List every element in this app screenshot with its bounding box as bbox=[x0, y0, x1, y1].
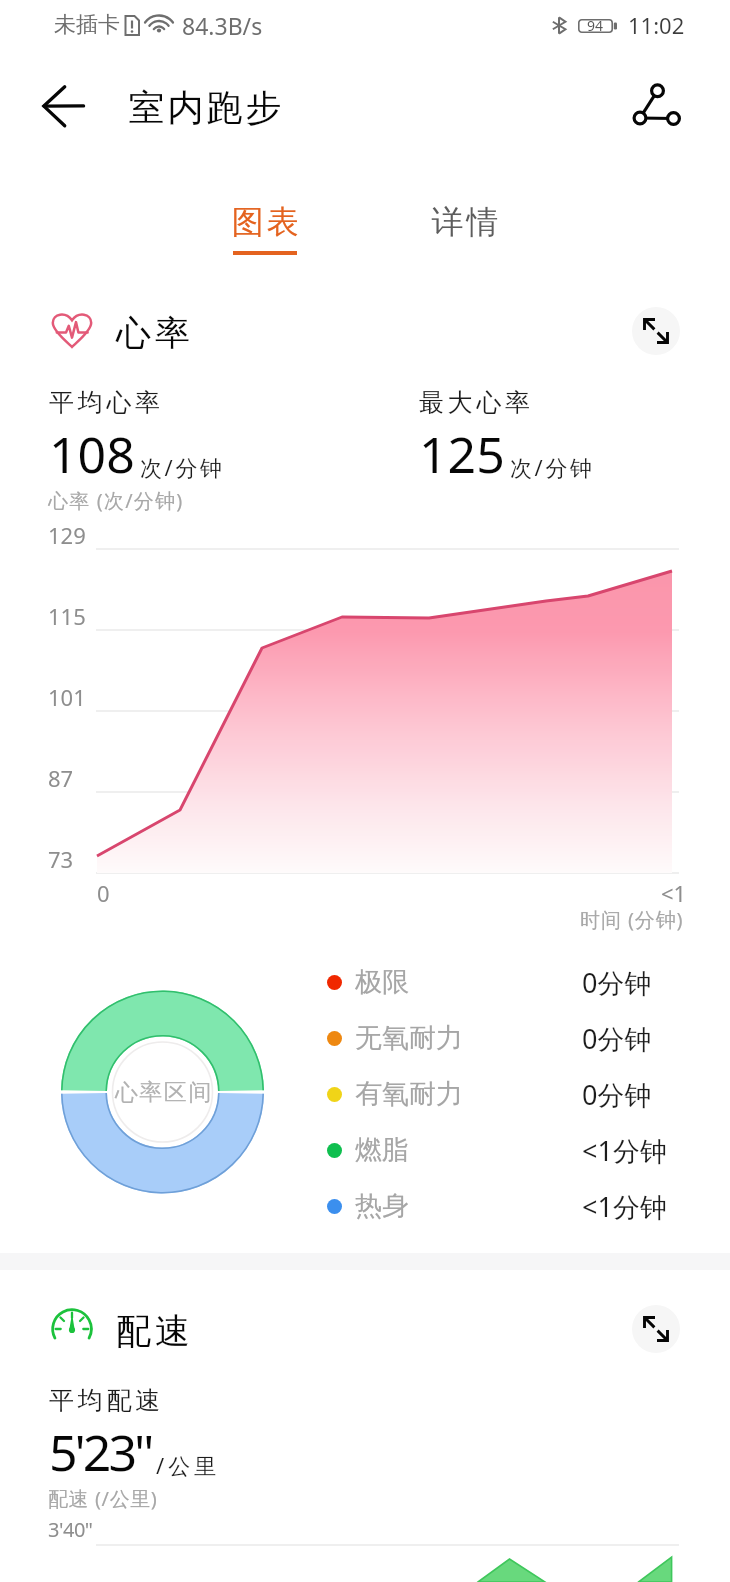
button[interactable]: 热身 bbox=[327, 1186, 690, 1226]
staticText: 详情 bbox=[430, 202, 500, 242]
button[interactable]: Expand bbox=[632, 1305, 680, 1353]
staticText: 有氧耐力 bbox=[355, 1077, 463, 1111]
staticText: 次/分钟 bbox=[510, 452, 595, 482]
staticText: 5'23" bbox=[49, 1418, 152, 1486]
staticText: /公里 bbox=[156, 1450, 221, 1480]
staticText: <1分钟 bbox=[582, 1132, 667, 1169]
staticText: 0分钟 bbox=[582, 1076, 652, 1113]
staticText: 最大心率 bbox=[419, 387, 534, 418]
staticText: 热身 bbox=[355, 1189, 409, 1223]
button[interactable]: Back bbox=[33, 76, 93, 136]
staticText: 图表 bbox=[230, 202, 300, 242]
staticText: 11:02 bbox=[628, 10, 685, 40]
button[interactable]: Share bbox=[624, 75, 690, 135]
button[interactable]: 图表 bbox=[205, 202, 325, 274]
staticText: 心率 (次/分钟) bbox=[48, 487, 184, 514]
staticText: 129 bbox=[48, 520, 86, 550]
staticText: 84.3B/s bbox=[182, 10, 263, 41]
staticText: 极限 bbox=[355, 965, 409, 999]
staticText: <1 bbox=[661, 878, 687, 908]
button[interactable]: 无氧耐力 bbox=[327, 1018, 690, 1058]
staticText: 室内跑步 bbox=[127, 85, 283, 130]
staticText: 73 bbox=[48, 844, 74, 874]
button[interactable]: 燃脂 bbox=[327, 1130, 690, 1170]
staticText: 燃脂 bbox=[355, 1133, 409, 1167]
staticText: 0分钟 bbox=[582, 1020, 652, 1057]
staticText: 125 bbox=[419, 420, 505, 488]
staticText: 94 bbox=[587, 16, 604, 35]
staticText: 时间 (分钟) bbox=[580, 906, 684, 933]
staticText: 心率 bbox=[114, 311, 192, 355]
button[interactable]: 详情 bbox=[405, 202, 525, 250]
staticText: 115 bbox=[48, 601, 86, 631]
staticText: 108 bbox=[49, 420, 135, 488]
staticText: 3'40" bbox=[48, 1516, 93, 1543]
staticText: 无氧耐力 bbox=[355, 1021, 463, 1055]
staticText: 配速 bbox=[114, 1309, 192, 1353]
staticText: 配速 (/公里) bbox=[48, 1485, 158, 1512]
button[interactable]: 极限 bbox=[327, 962, 690, 1002]
staticText: 0分钟 bbox=[582, 964, 652, 1001]
staticText: 次/分钟 bbox=[140, 452, 225, 482]
button[interactable]: 有氧耐力 bbox=[327, 1074, 690, 1114]
staticText: 心率区间 bbox=[114, 1078, 212, 1107]
staticText: 未插卡 bbox=[54, 11, 120, 39]
staticText: 平均心率 bbox=[49, 387, 164, 418]
staticText: 87 bbox=[48, 763, 74, 793]
staticText: 0 bbox=[97, 878, 110, 908]
button[interactable]: Expand bbox=[632, 307, 680, 355]
staticText: <1分钟 bbox=[582, 1188, 667, 1225]
staticText: 101 bbox=[48, 682, 86, 712]
staticText: 平均配速 bbox=[49, 1385, 164, 1416]
